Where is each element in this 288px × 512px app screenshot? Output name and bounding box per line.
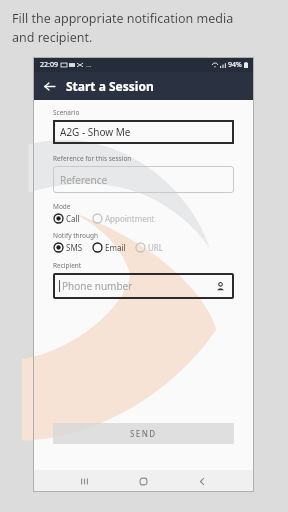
button[interactable]: Call <box>53 213 80 224</box>
staticText: 94% <box>228 60 242 70</box>
button[interactable]: SMS <box>53 242 83 253</box>
button[interactable]: Home <box>114 470 173 492</box>
staticText: Start a Session <box>66 78 154 94</box>
staticText: Reference for this session <box>53 154 132 163</box>
staticText: Mode <box>53 202 71 211</box>
button[interactable]: Back <box>39 76 59 96</box>
staticText: Reference <box>60 173 108 187</box>
button[interactable]: Recents <box>55 470 114 492</box>
button[interactable]: Back <box>173 470 232 492</box>
staticText: Email <box>105 242 126 253</box>
button[interactable]: Appointment <box>92 213 155 224</box>
button[interactable]: Pick contact <box>212 278 228 294</box>
button[interactable]: Phone number <box>53 273 234 299</box>
staticText: Scenario <box>53 108 80 117</box>
staticText: SMS <box>66 242 83 253</box>
button[interactable]: Email <box>92 242 126 253</box>
button[interactable]: A2G - Show Me <box>53 120 234 144</box>
button[interactable]: SEND <box>53 423 234 444</box>
staticText: and recipient. <box>12 29 93 46</box>
staticText: Phone number <box>62 279 133 293</box>
staticText: Notify through <box>53 231 99 240</box>
staticText: Call <box>66 213 80 224</box>
staticText: Fill the appropriate notification media <box>12 10 234 27</box>
staticText: Appointment <box>105 213 155 224</box>
staticText: Recipient <box>53 261 82 270</box>
button[interactable]: Reference <box>53 166 234 193</box>
staticText: ... <box>86 60 92 70</box>
staticText: URL <box>148 242 164 253</box>
staticText: A2G - Show Me <box>60 125 131 139</box>
button[interactable]: URL <box>135 242 164 253</box>
staticText: SEND <box>130 428 157 439</box>
staticText: 22:09 <box>40 60 58 70</box>
